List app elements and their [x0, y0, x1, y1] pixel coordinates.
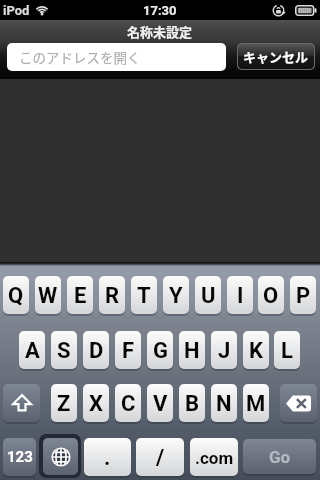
button[interactable]: H — [179, 331, 205, 369]
staticText: T — [137, 283, 151, 309]
staticText: A — [25, 338, 40, 364]
staticText: Z — [57, 391, 71, 417]
staticText: 名称未設定 — [127, 22, 193, 41]
staticText: V — [153, 391, 168, 417]
staticText: Q — [8, 283, 24, 309]
button[interactable]: E — [67, 276, 93, 314]
button[interactable]: . — [84, 438, 131, 476]
button[interactable]: X — [83, 384, 109, 422]
button[interactable]: M — [243, 384, 269, 422]
button[interactable]: Backspace — [280, 384, 317, 422]
staticText: Go — [269, 447, 291, 467]
staticText: Y — [169, 283, 183, 309]
button[interactable]: L — [274, 331, 300, 369]
button[interactable]: Shift — [3, 384, 40, 422]
button[interactable]: Y — [163, 276, 189, 314]
button[interactable]: R — [99, 276, 125, 314]
staticText: S — [57, 338, 71, 364]
other: Rotation lock — [272, 4, 285, 17]
button[interactable]: O — [258, 276, 284, 314]
button[interactable]: T — [131, 276, 157, 314]
button[interactable]: J — [211, 331, 237, 369]
staticText: W — [38, 283, 58, 309]
button[interactable]: .com — [190, 438, 238, 476]
button[interactable]: U — [195, 276, 221, 314]
staticText: キャンセル — [243, 47, 309, 66]
staticText: .com — [195, 448, 234, 468]
staticText: H — [184, 338, 200, 364]
staticText: / — [156, 445, 165, 471]
button[interactable]: Go — [243, 439, 316, 474]
staticText: N — [216, 391, 232, 417]
staticText: R — [105, 283, 120, 309]
button[interactable]: W — [35, 276, 61, 314]
button[interactable]: このアドレスを開く — [7, 43, 226, 71]
button[interactable]: V — [147, 384, 173, 422]
staticText: 123 — [7, 448, 33, 466]
other: Wi-Fi — [35, 4, 49, 15]
staticText: B — [185, 391, 200, 417]
staticText: K — [249, 338, 263, 364]
staticText: . — [104, 445, 111, 471]
button[interactable]: I — [227, 276, 253, 314]
button[interactable]: S — [51, 331, 77, 369]
button[interactable]: Z — [51, 384, 77, 422]
staticText: G — [153, 338, 168, 364]
button[interactable]: / — [136, 438, 184, 476]
button[interactable]: Q — [3, 276, 29, 314]
staticText: このアドレスを開く — [19, 47, 141, 67]
button[interactable]: G — [147, 331, 173, 369]
staticText: L — [281, 338, 293, 364]
staticText: E — [74, 283, 87, 309]
button[interactable]: キャンセル — [238, 44, 314, 69]
button[interactable]: F — [115, 331, 141, 369]
button[interactable]: C — [115, 384, 141, 422]
button[interactable]: P — [290, 276, 316, 314]
staticText: I — [237, 283, 244, 309]
staticText: 17:30 — [143, 3, 177, 18]
staticText: X — [89, 391, 103, 417]
button[interactable]: A — [19, 331, 45, 369]
staticText: O — [263, 283, 279, 309]
staticText: C — [121, 391, 136, 417]
button[interactable]: Switch keyboard — [39, 434, 81, 478]
button[interactable]: D — [83, 331, 109, 369]
staticText: iPod — [3, 3, 30, 18]
staticText: U — [201, 283, 216, 309]
button[interactable]: K — [243, 331, 269, 369]
button[interactable]: B — [179, 384, 205, 422]
staticText: M — [246, 391, 266, 417]
other: Battery — [295, 5, 317, 16]
button[interactable]: N — [211, 384, 237, 422]
staticText: J — [218, 338, 231, 364]
staticText: F — [122, 338, 135, 364]
button[interactable]: 123 — [3, 438, 36, 476]
staticText: P — [296, 283, 311, 309]
staticText: D — [89, 338, 104, 364]
